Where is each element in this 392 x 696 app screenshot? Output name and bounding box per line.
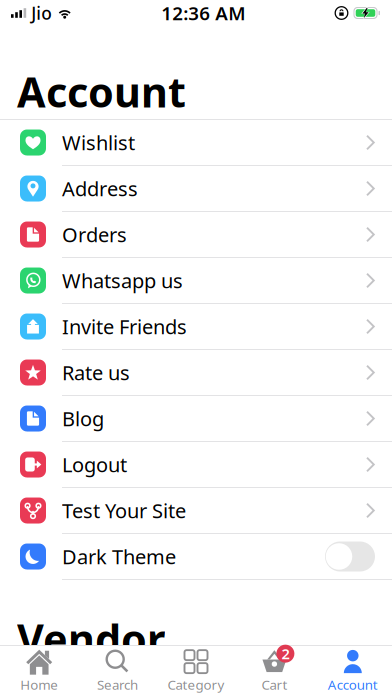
button[interactable]: Home bbox=[0, 646, 78, 696]
staticText: Wishlist bbox=[62, 129, 135, 156]
staticText: 2 bbox=[281, 644, 289, 663]
staticText: Blog bbox=[62, 405, 104, 432]
button[interactable]: Logout bbox=[0, 442, 392, 488]
staticText: Vendor bbox=[17, 611, 165, 666]
staticText: Address bbox=[62, 175, 138, 202]
button[interactable]: Account bbox=[314, 646, 392, 696]
staticText: Category bbox=[167, 676, 224, 693]
button[interactable]: Blog bbox=[0, 396, 392, 442]
staticText: Whatsapp us bbox=[62, 267, 183, 294]
button[interactable]: Orders bbox=[0, 212, 392, 258]
staticText: Invite Friends bbox=[62, 313, 187, 340]
button[interactable]: Search bbox=[78, 646, 157, 696]
button[interactable]: Dark Theme bbox=[0, 534, 392, 580]
staticText: Cart bbox=[261, 676, 287, 693]
button[interactable]: Invite Friends bbox=[0, 304, 392, 350]
staticText: Dark Theme bbox=[62, 543, 176, 570]
staticText: Account bbox=[328, 676, 378, 693]
button[interactable]: Category bbox=[157, 646, 235, 696]
staticText: Orders bbox=[62, 221, 127, 248]
staticText: Logout bbox=[62, 451, 127, 478]
button[interactable]: Wishlist bbox=[0, 120, 392, 166]
staticText: Search bbox=[97, 676, 138, 693]
button[interactable]: Whatsapp us bbox=[0, 258, 392, 304]
staticText: Account bbox=[17, 64, 186, 119]
button[interactable]: Address bbox=[0, 166, 392, 212]
button[interactable]: 2 bbox=[235, 646, 314, 696]
staticText: Rate us bbox=[62, 359, 130, 386]
button[interactable]: Test Your Site bbox=[0, 488, 392, 534]
staticText: Jio bbox=[31, 1, 52, 24]
staticText: 12:36 AM bbox=[161, 1, 245, 25]
button[interactable]: Rate us bbox=[0, 350, 392, 396]
staticText: Home bbox=[20, 676, 58, 693]
staticText: Test Your Site bbox=[62, 497, 186, 524]
